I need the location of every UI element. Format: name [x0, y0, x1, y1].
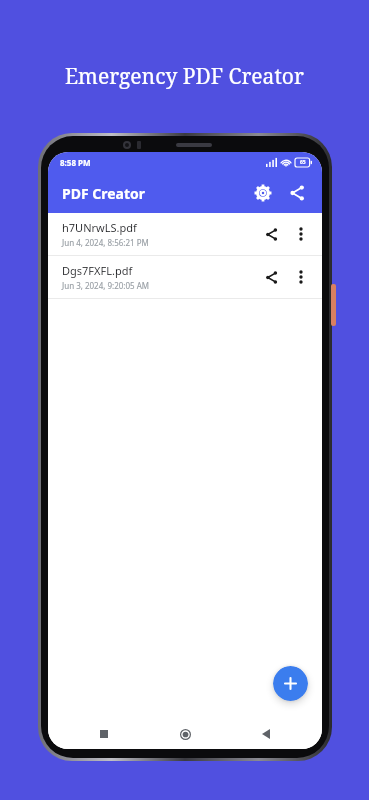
button[interactable]: Share Dgs7FXFL.pdf	[256, 262, 286, 292]
button[interactable]: More options for Dgs7FXFL.pdf	[286, 262, 316, 292]
button[interactable]: Recent apps	[79, 720, 129, 748]
button[interactable]: Back	[241, 720, 291, 748]
staticText: Jun 3, 2024, 9:20:05 AM	[62, 280, 150, 291]
button[interactable]: Share	[280, 176, 314, 210]
staticText: Dgs7FXFL.pdf	[62, 263, 133, 278]
staticText: Jun 4, 2024, 8:56:21 PM	[62, 237, 149, 248]
staticText: Emergency PDF Creator	[65, 62, 304, 91]
staticText: h7UNrwLS.pdf	[62, 220, 137, 235]
button[interactable]: Home	[160, 720, 210, 748]
button[interactable]: Share h7UNrwLS.pdf	[256, 219, 286, 249]
button[interactable]: More options for h7UNrwLS.pdf	[286, 219, 316, 249]
button[interactable]: Create new PDF	[273, 666, 308, 701]
button[interactable]: h7UNrwLS.pdf	[48, 213, 322, 255]
staticText: 8:58 PM	[60, 157, 91, 168]
staticText: 65	[300, 159, 306, 166]
button[interactable]: Dgs7FXFL.pdf	[48, 256, 322, 298]
staticText: PDF Creator	[62, 184, 146, 203]
button[interactable]: Settings	[246, 176, 280, 210]
